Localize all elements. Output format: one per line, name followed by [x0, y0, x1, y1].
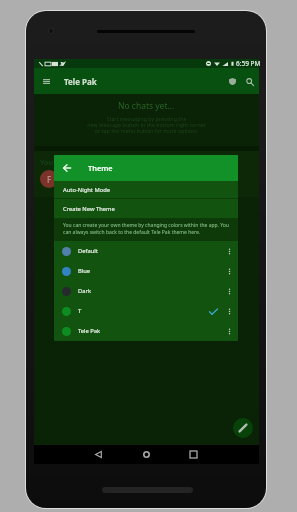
button[interactable]: Tele Pak [54, 321, 238, 341]
staticText: Auto-Night Mode [63, 186, 111, 194]
button[interactable]: Search [238, 70, 261, 93]
button[interactable]: Auto-Night Mode [54, 181, 238, 198]
staticText: 6:59 PM [236, 59, 261, 68]
button[interactable]: More options [223, 285, 236, 298]
staticText: Default [78, 247, 98, 255]
button[interactable]: Default [54, 241, 238, 261]
button[interactable]: Proxy [221, 70, 244, 93]
button[interactable]: More options [223, 265, 236, 278]
staticText: No chats yet... [118, 100, 175, 112]
staticText: Tele Pak [64, 76, 97, 87]
staticText: Tele Pak [78, 327, 101, 335]
button[interactable]: More options [223, 305, 236, 318]
staticText: T [78, 307, 82, 315]
staticText: Blue [78, 267, 91, 275]
staticText: Theme [88, 163, 113, 173]
staticText: F [47, 174, 52, 185]
button[interactable]: More options [223, 245, 236, 258]
staticText: Start messaging by pressing the new mess… [87, 115, 206, 134]
button[interactable]: Blue [54, 261, 238, 281]
button[interactable]: Create New Theme [54, 199, 238, 218]
button[interactable]: Home [137, 445, 156, 464]
button[interactable]: Dark [54, 281, 238, 301]
staticText: Create New Theme [63, 205, 115, 213]
button[interactable]: New message [233, 418, 253, 438]
staticText: Dark [78, 287, 91, 295]
staticText: You can create your own theme by changin… [63, 222, 229, 236]
staticText: You [40, 158, 53, 168]
button[interactable]: Recents [184, 445, 203, 464]
button[interactable]: Back [54, 155, 80, 181]
button[interactable]: Menu [34, 69, 58, 93]
button[interactable]: More options [223, 325, 236, 338]
button[interactable]: Back [89, 445, 108, 464]
button[interactable]: T [54, 301, 238, 321]
